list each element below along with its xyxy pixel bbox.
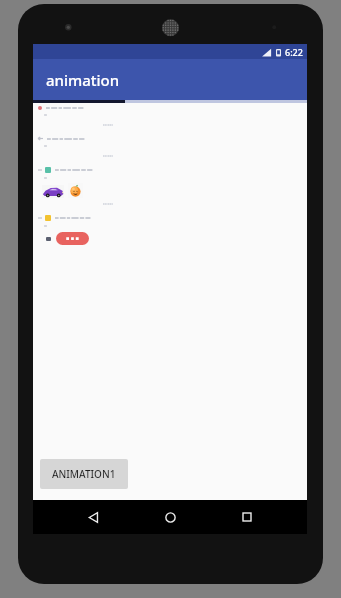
staticText: 6:22 [285, 46, 303, 58]
button[interactable]: Recent apps [230, 500, 264, 534]
button[interactable]: Back [76, 500, 110, 534]
button[interactable]: ANIMATION1 [40, 459, 128, 489]
button[interactable]: Send message [33, 215, 307, 245]
button[interactable]: Home [153, 500, 187, 534]
staticText: ANIMATION1 [52, 467, 116, 481]
staticText: ▪ ▪ ▪ [66, 235, 79, 242]
button[interactable] [33, 106, 307, 127]
staticText: animation [46, 70, 120, 90]
button[interactable] [33, 136, 307, 158]
button[interactable] [33, 167, 307, 206]
button[interactable]: Send message [56, 232, 89, 245]
